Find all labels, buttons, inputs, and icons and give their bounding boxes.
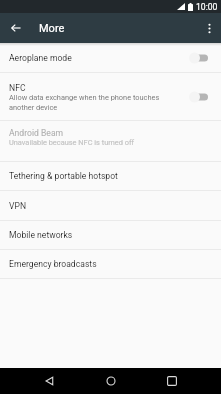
staticText: Tethering & portable hotspot: [9, 171, 118, 181]
staticText: Mobile networks: [9, 230, 73, 240]
staticText: Emergency broadcasts: [9, 259, 97, 269]
button[interactable]: Navigate up: [0, 13, 32, 43]
button[interactable]: Recent apps: [159, 368, 185, 394]
button[interactable]: Tethering & portable hotspot: [0, 162, 221, 190]
button[interactable]: Back: [36, 368, 62, 394]
button[interactable]: Aeroplane mode: [0, 43, 221, 72]
button[interactable]: Home: [98, 368, 124, 394]
button[interactable]: Emergency broadcasts: [0, 250, 221, 278]
staticText: NFC: [9, 83, 26, 93]
staticText: 10:00: [196, 2, 218, 12]
button[interactable]: Android Beam: [0, 121, 221, 161]
button[interactable]: NFC: [0, 73, 221, 120]
button[interactable]: VPN: [0, 191, 221, 220]
staticText: VPN: [9, 201, 27, 211]
staticText: Aeroplane mode: [9, 53, 72, 63]
staticText: More: [39, 22, 65, 35]
button[interactable]: Mobile networks: [0, 221, 221, 249]
staticText: Unavailable because NFC is turned off: [9, 138, 135, 147]
staticText: Android Beam: [9, 128, 64, 138]
button[interactable]: More options: [197, 16, 221, 40]
staticText: Allow data exchange when the phone touch…: [9, 93, 170, 112]
